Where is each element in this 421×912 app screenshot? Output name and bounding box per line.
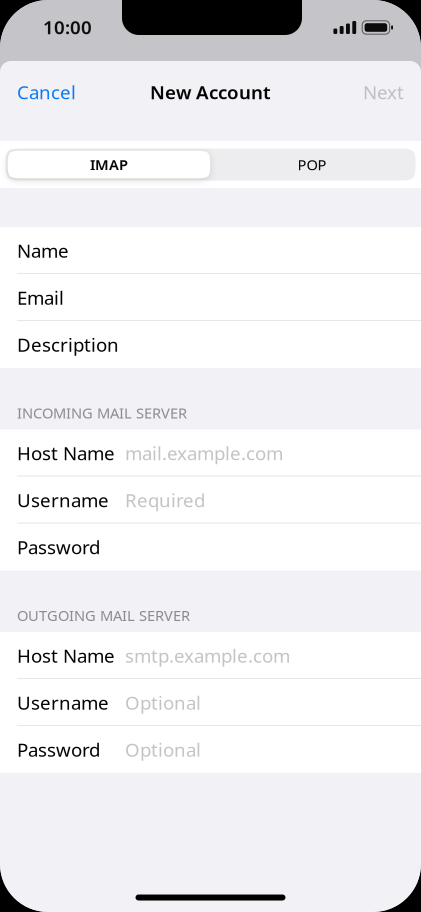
staticText: 10:00 bbox=[43, 15, 92, 39]
staticText: New Account bbox=[150, 80, 271, 104]
button[interactable]: Username bbox=[0, 476, 421, 523]
staticText: mail.example.com bbox=[125, 441, 283, 465]
staticText: Password bbox=[17, 535, 100, 559]
staticText: Required bbox=[125, 488, 205, 512]
button[interactable]: Password bbox=[0, 726, 421, 773]
button[interactable]: Username bbox=[0, 679, 421, 726]
button[interactable]: Host Name bbox=[0, 429, 421, 476]
staticText: Password bbox=[17, 737, 100, 762]
staticText: OUTGOING MAIL SERVER bbox=[17, 605, 190, 625]
staticText: Optional bbox=[125, 737, 201, 762]
staticText: Optional bbox=[125, 690, 201, 715]
staticText: IMAP bbox=[90, 155, 128, 174]
staticText: Username bbox=[17, 690, 109, 715]
staticText: Host Name bbox=[17, 643, 115, 668]
staticText: Description bbox=[17, 332, 119, 357]
button[interactable]: Email bbox=[0, 274, 421, 321]
staticText: Host Name bbox=[17, 441, 115, 465]
button[interactable]: Password bbox=[0, 523, 421, 570]
staticText: Username bbox=[17, 488, 109, 512]
button[interactable]: Cancel bbox=[0, 70, 88, 114]
staticText: POP bbox=[297, 155, 326, 174]
staticText: INCOMING MAIL SERVER bbox=[17, 403, 187, 422]
staticText: Next bbox=[363, 80, 404, 104]
button[interactable]: Description bbox=[0, 321, 421, 368]
button[interactable]: Host Name bbox=[0, 632, 421, 679]
button[interactable]: IMAP bbox=[7, 150, 210, 178]
button[interactable]: POP bbox=[210, 150, 413, 178]
staticText: Cancel bbox=[17, 80, 76, 104]
staticText: Email bbox=[17, 285, 64, 310]
staticText: smtp.example.com bbox=[125, 643, 290, 668]
button[interactable]: Name bbox=[0, 227, 421, 274]
staticText: Name bbox=[17, 238, 69, 263]
button[interactable]: Next bbox=[351, 70, 421, 114]
